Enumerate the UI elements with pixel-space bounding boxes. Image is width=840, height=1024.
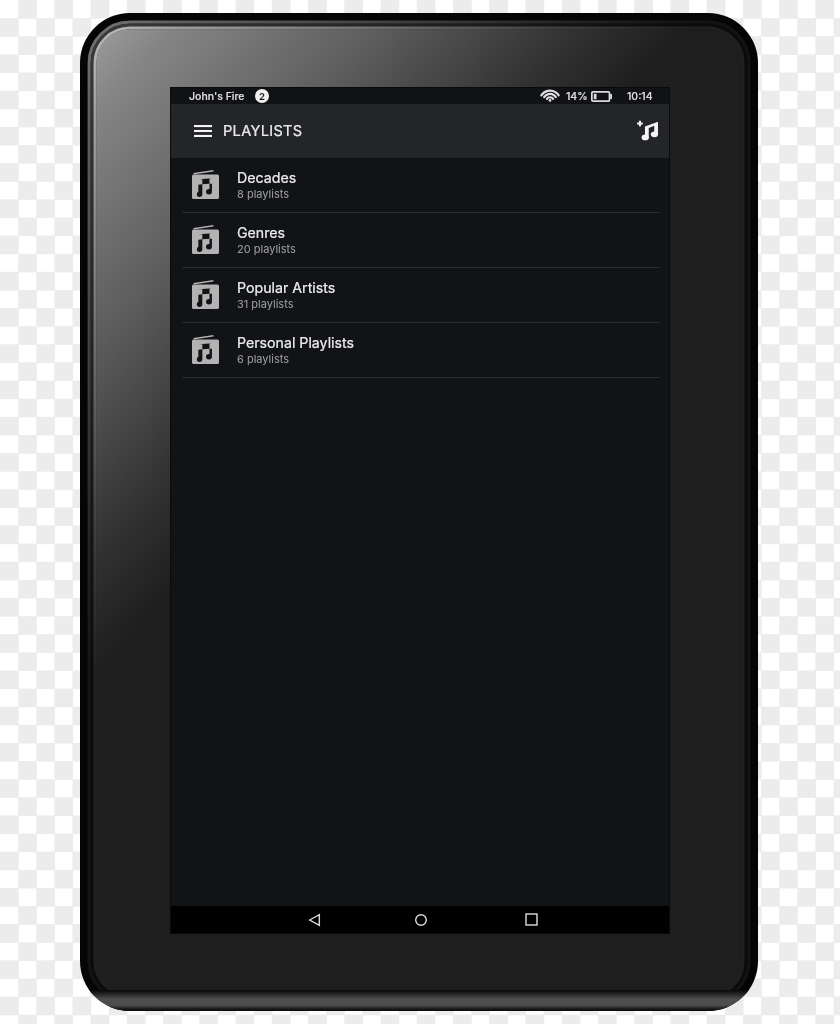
- staticText: 20 playlists: [237, 242, 296, 255]
- staticText: 6 playlists: [237, 352, 289, 365]
- button[interactable]: Decades: [171, 158, 669, 213]
- button[interactable]: Back: [297, 906, 331, 933]
- button[interactable]: Personal Playlists: [171, 323, 669, 378]
- button[interactable]: Popular Artists: [171, 268, 669, 323]
- button[interactable]: Home: [404, 906, 438, 933]
- staticText: 31 playlists: [237, 297, 294, 310]
- button[interactable]: Genres: [171, 213, 669, 268]
- staticText: 8 playlists: [237, 187, 289, 200]
- staticText: 2: [259, 91, 265, 102]
- staticText: Decades: [237, 169, 297, 186]
- button[interactable]: Open navigation menu: [190, 118, 216, 144]
- staticText: Genres: [237, 224, 286, 241]
- staticText: 14%: [566, 90, 588, 103]
- staticText: 10:14: [627, 90, 653, 103]
- button[interactable]: Recent apps: [514, 906, 548, 933]
- staticText: Popular Artists: [237, 279, 336, 296]
- button[interactable]: Add playlist: [634, 118, 660, 144]
- staticText: Personal Playlists: [237, 334, 355, 351]
- staticText: John's Fire: [189, 90, 245, 103]
- staticText: PLAYLISTS: [223, 122, 303, 140]
